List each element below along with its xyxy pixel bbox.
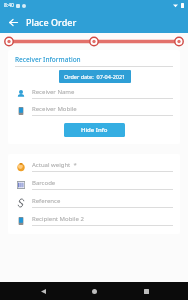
button[interactable]: Back xyxy=(5,14,21,30)
staticText: Place Order xyxy=(26,16,77,28)
staticText: 8:40 xyxy=(4,2,14,9)
staticText: Actual weight * xyxy=(32,161,77,169)
staticText: Receiver Mobile xyxy=(32,105,77,113)
button[interactable]: Recent apps xyxy=(137,282,155,300)
staticText: Receiver Information xyxy=(15,55,81,64)
staticText: Hide Info xyxy=(81,126,108,134)
button[interactable]: Receiver Name xyxy=(15,88,173,99)
staticText: Receiver Name xyxy=(32,88,75,96)
staticText: Order date: 07-04-2021 xyxy=(64,73,126,80)
button[interactable]: Order date: 07-04-2021 xyxy=(59,70,131,83)
staticText: Reference xyxy=(32,197,61,205)
button[interactable]: Reference xyxy=(15,197,173,208)
button[interactable]: Hide Info xyxy=(64,123,125,137)
button[interactable]: Barcode xyxy=(15,179,173,190)
staticText: Barcode xyxy=(32,179,56,187)
button[interactable]: Recipient Mobile 2 xyxy=(15,215,173,226)
button[interactable]: Receiver Mobile xyxy=(15,105,173,116)
staticText: Recipient Mobile 2 xyxy=(32,215,84,223)
button[interactable]: Actual weight * xyxy=(15,161,173,172)
button[interactable]: Back xyxy=(34,282,52,300)
button[interactable]: Home xyxy=(85,282,103,300)
